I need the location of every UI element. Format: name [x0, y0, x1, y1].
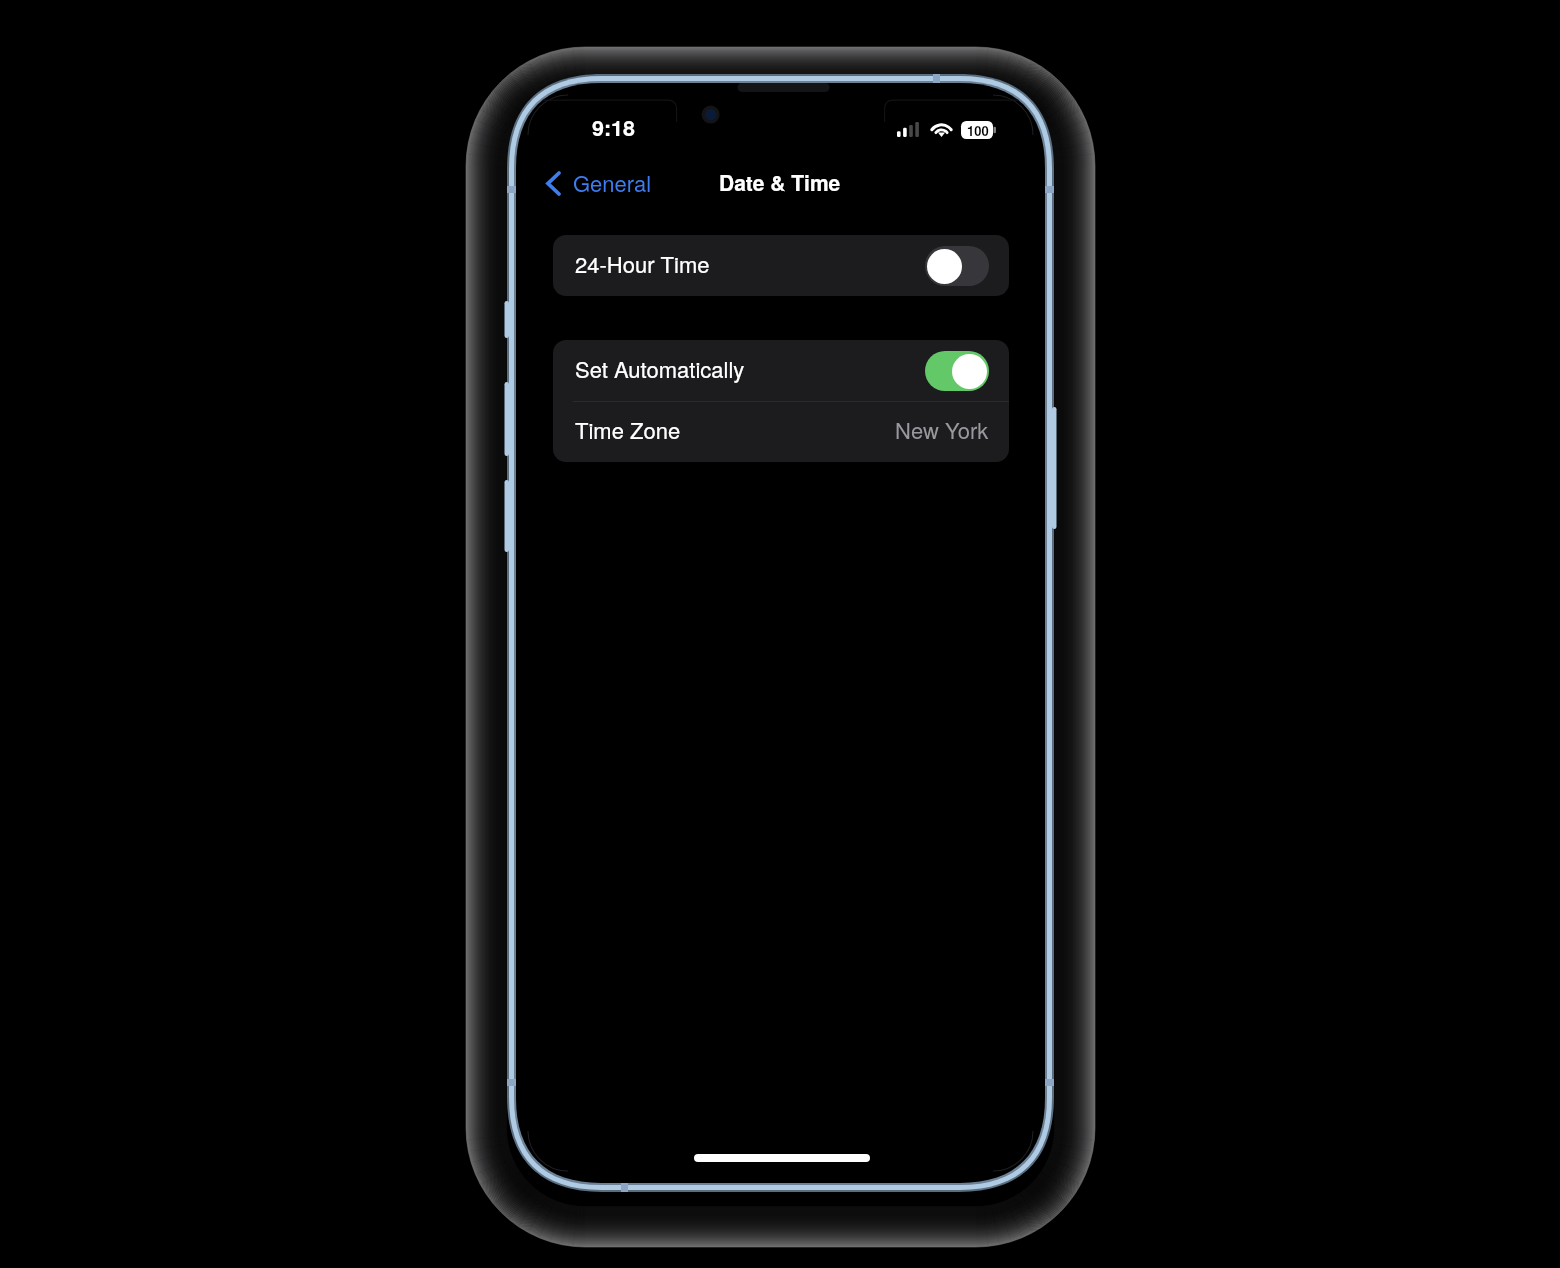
button[interactable]: 24-Hour Time [553, 235, 1009, 296]
staticText: 9:18 [592, 112, 636, 143]
button[interactable]: Back to General [544, 165, 654, 201]
staticText: 100 [967, 121, 989, 139]
button[interactable]: Time Zone [553, 402, 1009, 462]
button[interactable]: Switch, on [925, 351, 989, 391]
staticText: General [573, 167, 652, 199]
button[interactable]: Switch, off [925, 246, 989, 286]
staticText: New York [895, 414, 989, 446]
button[interactable]: Set Automatically [553, 340, 1009, 401]
staticText: Set Automatically [575, 353, 745, 385]
staticText: 24-Hour Time [575, 248, 710, 280]
staticText: Time Zone [575, 414, 681, 446]
staticText: Date & Time [719, 167, 841, 197]
